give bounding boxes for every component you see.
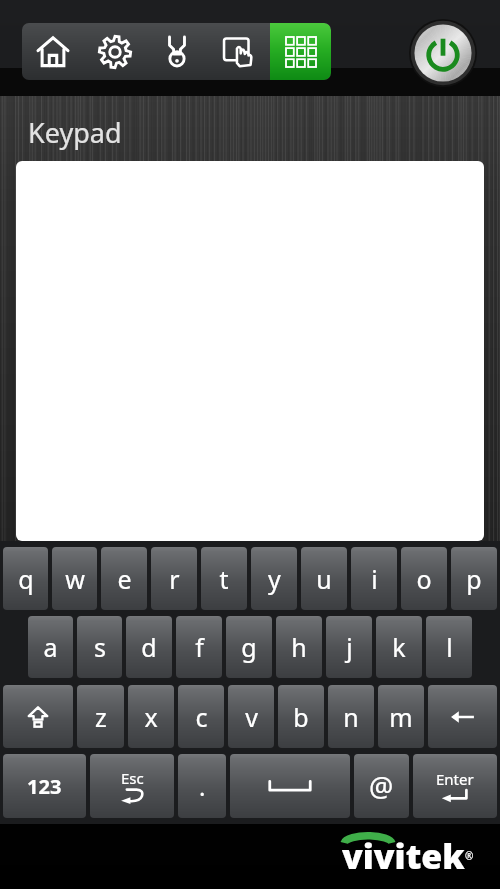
staticText: j — [346, 630, 353, 664]
button[interactable]: Enter — [413, 754, 497, 818]
button[interactable]: 123 — [3, 754, 86, 818]
staticText: r — [169, 562, 180, 596]
staticText: m — [389, 700, 413, 734]
staticText: e — [117, 562, 132, 596]
button[interactable]: Touchpad — [208, 23, 270, 80]
button[interactable]: x — [128, 685, 174, 748]
button[interactable]: g — [226, 616, 272, 678]
button[interactable]: t — [201, 547, 247, 610]
button[interactable]: Period — [178, 754, 226, 818]
button[interactable]: d — [126, 616, 172, 678]
staticText: s — [94, 630, 106, 664]
button[interactable]: k — [376, 616, 422, 678]
staticText: k — [392, 630, 406, 664]
staticText: q — [18, 562, 34, 596]
staticText: p — [466, 562, 482, 596]
staticText: z — [95, 700, 107, 734]
staticText: a — [43, 630, 58, 664]
button[interactable]: Keypad — [270, 23, 331, 80]
staticText: t — [219, 562, 229, 596]
button[interactable]: n — [328, 685, 374, 748]
button[interactable]: At sign — [354, 754, 409, 818]
button[interactable]: w — [52, 547, 97, 610]
button[interactable]: f — [176, 616, 222, 678]
button[interactable]: o — [401, 547, 447, 610]
button[interactable]: Tools — [146, 23, 208, 80]
staticText: ® — [465, 849, 474, 863]
staticText: Esc — [121, 768, 144, 788]
button[interactable]: q — [3, 547, 48, 610]
button[interactable]: a — [28, 616, 73, 678]
staticText: x — [144, 700, 158, 734]
button[interactable]: y — [251, 547, 297, 610]
staticText: c — [195, 700, 208, 734]
button[interactable]: v — [228, 685, 274, 748]
staticText: h — [291, 630, 307, 664]
staticText: w — [65, 562, 85, 596]
staticText: y — [268, 562, 281, 596]
button[interactable]: r — [151, 547, 197, 610]
button[interactable]: Shift — [3, 685, 73, 748]
staticText: 123 — [27, 773, 62, 800]
button[interactable]: b — [278, 685, 324, 748]
staticText: vivitek — [342, 833, 465, 879]
staticText: Keypad — [28, 114, 122, 151]
button[interactable]: Home — [22, 23, 84, 80]
staticText: n — [343, 700, 359, 734]
staticText: Enter — [436, 769, 474, 789]
button[interactable]: i — [351, 547, 397, 610]
button[interactable]: l — [426, 616, 472, 678]
staticText: b — [293, 700, 309, 734]
staticText: u — [316, 562, 332, 596]
staticText: g — [241, 630, 257, 664]
button[interactable]: p — [451, 547, 497, 610]
button[interactable]: e — [101, 547, 147, 610]
button[interactable]: s — [77, 616, 122, 678]
staticText: d — [141, 630, 157, 664]
button[interactable]: m — [378, 685, 424, 748]
staticText: i — [371, 562, 378, 596]
button[interactable]: c — [178, 685, 224, 748]
staticText: @ — [369, 768, 394, 805]
staticText: . — [199, 770, 206, 803]
button[interactable]: Settings — [84, 23, 146, 80]
button[interactable]: j — [326, 616, 372, 678]
staticText: v — [245, 700, 258, 734]
button[interactable]: z — [77, 685, 124, 748]
button[interactable]: Space — [230, 754, 350, 818]
button[interactable]: Esc — [90, 754, 174, 818]
button[interactable]: Backspace — [428, 685, 497, 748]
staticText: f — [195, 630, 204, 664]
staticText: o — [416, 562, 432, 596]
staticText: l — [446, 630, 453, 664]
button[interactable]: Power — [409, 19, 477, 87]
button[interactable]: h — [276, 616, 322, 678]
button[interactable]: u — [301, 547, 347, 610]
